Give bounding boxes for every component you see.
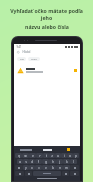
staticText: d bbox=[31, 160, 33, 164]
staticText: b bbox=[52, 166, 54, 170]
button[interactable]: Vše bbox=[17, 57, 26, 61]
button[interactable]: g bbox=[42, 159, 49, 164]
staticText: Vše bbox=[20, 58, 24, 61]
button[interactable]: i bbox=[61, 153, 67, 158]
staticText: t bbox=[46, 154, 47, 158]
button[interactable]: f bbox=[35, 159, 42, 164]
button[interactable]: u bbox=[55, 153, 61, 158]
staticText: n bbox=[59, 166, 61, 170]
button[interactable]: Period bbox=[62, 171, 69, 176]
button[interactable]: a bbox=[17, 159, 23, 164]
staticText: r bbox=[39, 154, 41, 158]
staticText: s bbox=[25, 160, 27, 164]
staticText: e bbox=[32, 154, 34, 158]
button[interactable]: e bbox=[29, 153, 36, 158]
staticText: z bbox=[51, 154, 53, 158]
button[interactable]: Symbols bbox=[15, 171, 24, 176]
button[interactable] bbox=[58, 148, 79, 151]
button[interactable]: p bbox=[73, 153, 79, 158]
staticText: g bbox=[45, 160, 47, 164]
button[interactable] bbox=[37, 149, 58, 151]
staticText: i bbox=[64, 154, 65, 158]
button[interactable]: Space bbox=[33, 171, 61, 176]
staticText: a bbox=[19, 160, 21, 164]
button[interactable]: Hľadať bbox=[14, 49, 80, 55]
button[interactable]: j bbox=[56, 159, 63, 164]
staticText: Filtre bbox=[31, 58, 37, 61]
staticText: názvu alebo čísla bbox=[25, 23, 69, 30]
button[interactable]: Označiť bbox=[14, 64, 80, 76]
staticText: Vyhľadať očko mátate podľa jeho bbox=[7, 7, 86, 21]
button[interactable] bbox=[15, 149, 37, 151]
button[interactable]: Filtre bbox=[28, 57, 40, 61]
staticText: f bbox=[38, 160, 39, 164]
button[interactable]: d bbox=[29, 159, 35, 164]
button[interactable]: b bbox=[49, 165, 56, 170]
staticText: o bbox=[69, 154, 71, 158]
staticText: w bbox=[24, 154, 27, 158]
button[interactable]: t bbox=[43, 153, 49, 158]
button[interactable]: y bbox=[23, 165, 29, 170]
staticText: Hľadať bbox=[22, 50, 31, 54]
button[interactable]: v bbox=[42, 165, 49, 170]
button[interactable]: x bbox=[29, 165, 35, 170]
button[interactable]: l bbox=[70, 159, 77, 164]
staticText: j bbox=[59, 160, 60, 164]
staticText: x bbox=[31, 166, 33, 170]
staticText: l bbox=[73, 160, 74, 164]
staticText: c bbox=[38, 166, 40, 170]
staticText: y bbox=[25, 166, 27, 170]
staticText: q bbox=[18, 154, 20, 158]
button[interactable]: w bbox=[22, 153, 29, 158]
staticText: 9:41 bbox=[16, 45, 22, 49]
button[interactable]: k bbox=[63, 159, 70, 164]
staticText: p bbox=[75, 154, 77, 158]
button[interactable]: z bbox=[49, 153, 55, 158]
button[interactable]: Shift bbox=[15, 165, 23, 170]
staticText: v bbox=[45, 166, 47, 170]
button[interactable]: c bbox=[35, 165, 42, 170]
button[interactable]: s bbox=[23, 159, 29, 164]
button[interactable]: n bbox=[56, 165, 63, 170]
button[interactable]: r bbox=[36, 153, 43, 158]
staticText: h bbox=[52, 160, 54, 164]
staticText: m bbox=[65, 166, 68, 170]
staticText: u bbox=[57, 154, 59, 158]
button[interactable]: m bbox=[63, 165, 70, 170]
staticText: k bbox=[66, 160, 68, 164]
button[interactable]: Backspace bbox=[70, 165, 79, 170]
button[interactable]: Emoji bbox=[25, 171, 32, 176]
button[interactable]: h bbox=[49, 159, 56, 164]
button[interactable]: o bbox=[67, 153, 73, 158]
button[interactable]: q bbox=[15, 153, 22, 158]
button[interactable]: Enter bbox=[70, 171, 79, 176]
